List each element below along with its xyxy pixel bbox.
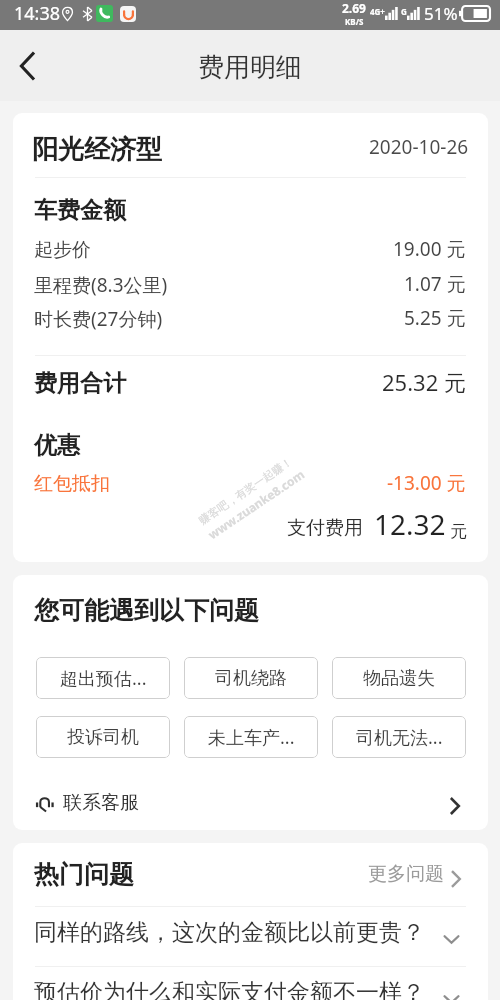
button[interactable]: 司机绕路 xyxy=(184,657,318,699)
staticText: 超出预估... xyxy=(60,666,147,691)
staticText: 5.25 元 xyxy=(404,305,466,331)
staticText: 优惠 xyxy=(34,431,80,460)
button[interactable]: 超出预估... xyxy=(36,657,170,699)
staticText: 2.69 xyxy=(342,0,366,16)
button[interactable]: Back xyxy=(2,42,50,90)
staticText: 14:38 xyxy=(14,1,61,26)
button[interactable]: 更多问题 xyxy=(330,855,461,895)
staticText: 25.32 元 xyxy=(382,367,466,397)
staticText: 司机无法... xyxy=(356,725,443,750)
staticText: -13.00 元 xyxy=(387,470,466,496)
staticText: 元 xyxy=(450,521,467,542)
staticText: 费用明细 xyxy=(198,51,302,84)
staticText: 阳光经济型 xyxy=(32,133,162,166)
staticText: 1.07 元 xyxy=(404,271,466,297)
button[interactable]: 投诉司机 xyxy=(36,716,170,758)
button[interactable]: 物品遗失 xyxy=(332,657,466,699)
staticText: 19.00 元 xyxy=(393,236,466,262)
staticText: 您可能遇到以下问题 xyxy=(34,595,259,626)
staticText: 费用合计 xyxy=(34,369,126,398)
button[interactable]: 预估价为什么和实际支付金额不一样？ xyxy=(13,967,487,1000)
staticText: 赚客吧，有奖一起赚！ xyxy=(196,454,295,527)
staticText: 51% xyxy=(424,2,458,25)
staticText: 未上车产... xyxy=(208,725,295,750)
staticText: 里程费(8.3公里) xyxy=(34,272,168,298)
staticText: 4G+ xyxy=(370,6,385,17)
staticText: 车费金额 xyxy=(34,196,126,225)
staticText: 起步价 xyxy=(34,238,91,262)
staticText: G xyxy=(401,6,407,17)
staticText: 预估价为什么和实际支付金额不一样？ xyxy=(34,978,425,1000)
staticText: 同样的路线，这次的金额比以前更贵？ xyxy=(34,918,425,947)
button[interactable]: 未上车产... xyxy=(184,716,318,758)
staticText: 热门问题 xyxy=(34,859,134,890)
staticText: 投诉司机 xyxy=(67,726,139,749)
staticText: KB/S xyxy=(345,16,364,27)
staticText: 联系客服 xyxy=(63,791,139,815)
staticText: 更多问题 xyxy=(368,862,444,886)
staticText: 支付费用 xyxy=(287,516,363,540)
button[interactable]: 同样的路线，这次的金额比以前更贵？ xyxy=(13,907,487,957)
staticText: 时长费(27分钟) xyxy=(34,306,163,332)
staticText: 司机绕路 xyxy=(215,667,287,690)
staticText: 12.32 xyxy=(374,505,446,543)
button[interactable]: 联系客服 xyxy=(13,778,487,828)
staticText: www.zuanke8.com xyxy=(205,466,307,542)
button[interactable]: 司机无法... xyxy=(332,716,466,758)
staticText: 2020-10-26 xyxy=(369,134,469,160)
staticText: 红包抵扣 xyxy=(34,472,110,496)
staticText: 物品遗失 xyxy=(363,667,435,690)
